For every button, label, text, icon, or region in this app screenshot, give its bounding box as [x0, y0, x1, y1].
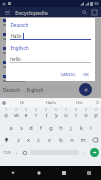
button[interactable]: Switch keyboard: [76, 166, 101, 180]
button[interactable]: s: [16, 120, 26, 133]
button[interactable]: Hei: [65, 98, 94, 107]
button[interactable]: Enter: [88, 146, 101, 159]
staticText: Deutsch: [3, 87, 20, 93]
staticText: Encyclopedia: [15, 9, 48, 16]
button[interactable]: 5: [41, 107, 51, 120]
button[interactable]: Keyboard settings: [94, 98, 101, 107]
button[interactable]: d: [26, 120, 36, 133]
staticText: j: [70, 124, 72, 132]
staticText: r: [35, 111, 38, 119]
staticText: m: [80, 136, 86, 144]
staticText: 9: [85, 108, 87, 112]
button[interactable]: c: [33, 133, 44, 146]
staticText: l: [90, 124, 92, 132]
button[interactable]: [0, 73, 101, 87]
staticText: ,: [16, 149, 18, 156]
staticText: w: [14, 111, 19, 119]
staticText: d: [29, 124, 33, 132]
button[interactable]: 4: [31, 107, 41, 120]
staticText: y: [55, 111, 58, 119]
staticText: x: [27, 136, 30, 144]
staticText: 5: [45, 108, 47, 112]
button[interactable]: m: [77, 133, 88, 146]
staticText: c: [37, 136, 40, 144]
button[interactable]: Recent apps: [51, 166, 76, 180]
staticText: Englisch: [10, 45, 29, 51]
staticText: 8: [75, 108, 77, 112]
button[interactable]: [0, 59, 101, 73]
staticText: s: [20, 124, 23, 132]
button[interactable]: 9: [81, 107, 91, 120]
staticText: Englisch: [26, 87, 44, 93]
button[interactable]: 6: [51, 107, 61, 120]
staticText: 0: [95, 108, 97, 112]
button[interactable]: 2: [11, 107, 21, 120]
button[interactable]: Voice input: [0, 98, 7, 107]
staticText: CANCEL: [60, 72, 76, 77]
button[interactable]: Hallo: [36, 98, 65, 107]
staticText: f: [40, 124, 42, 132]
staticText: 2: [15, 108, 17, 112]
staticText: o: [84, 111, 88, 119]
staticText: e: [24, 111, 28, 119]
button[interactable]: Emoji: [21, 146, 29, 159]
button[interactable]: More options: [90, 8, 98, 16]
button[interactable]: n: [66, 133, 77, 146]
button[interactable]: j: [66, 120, 76, 133]
staticText: OK: [83, 72, 89, 77]
button[interactable]: 0: [91, 107, 101, 120]
staticText: Hallo: [10, 33, 22, 39]
button[interactable]: 7: [61, 107, 71, 120]
button[interactable]: a: [5, 120, 16, 133]
button[interactable]: ,: [13, 146, 21, 159]
button[interactable]: Home: [26, 166, 51, 180]
button[interactable]: Hi: [7, 98, 36, 107]
staticText: 1: [5, 108, 7, 112]
button[interactable]: Add entry: [79, 83, 92, 96]
button[interactable]: ?123: [0, 146, 13, 159]
button[interactable]: [0, 45, 101, 59]
button[interactable]: .: [80, 146, 88, 159]
button[interactable]: OK: [81, 70, 91, 79]
button[interactable]: Deutsch: [0, 85, 23, 94]
staticText: ?123: [3, 150, 11, 155]
staticText: k: [80, 124, 83, 132]
button[interactable]: Search: [80, 8, 88, 16]
staticText: 4: [35, 108, 37, 112]
button[interactable]: Shift: [0, 133, 13, 146]
button[interactable]: z: [13, 133, 23, 146]
button[interactable]: 8: [71, 107, 81, 120]
staticText: b: [59, 136, 63, 144]
button[interactable]: Hallo: [10, 31, 91, 40]
staticText: Hi: [20, 100, 24, 105]
button[interactable]: Backspace: [88, 133, 101, 146]
button[interactable]: CANCEL: [58, 70, 78, 79]
staticText: g: [49, 124, 53, 132]
button[interactable]: v: [44, 133, 55, 146]
button[interactable]: Open navigation drawer: [3, 8, 11, 16]
button[interactable]: g: [46, 120, 56, 133]
staticText: t: [45, 111, 48, 119]
staticText: i: [75, 111, 77, 119]
button[interactable]: k: [76, 120, 86, 133]
staticText: v: [48, 136, 51, 144]
staticText: Deutsch: [10, 22, 29, 28]
button[interactable]: h: [56, 120, 66, 133]
button[interactable]: 1: [0, 107, 11, 120]
button[interactable]: f: [36, 120, 46, 133]
staticText: .: [83, 149, 85, 156]
button[interactable]: 3: [21, 107, 31, 120]
staticText: 7: [65, 108, 67, 112]
button[interactable]: b: [55, 133, 66, 146]
button[interactable]: l: [86, 120, 96, 133]
staticText: Hei: [76, 100, 83, 105]
button[interactable]: [0, 17, 101, 31]
button[interactable]: x: [23, 133, 33, 146]
button[interactable]: hello: [10, 54, 91, 63]
button[interactable]: [0, 31, 101, 45]
staticText: u: [64, 111, 68, 119]
button[interactable]: Englisch: [23, 85, 47, 94]
button[interactable]: Back: [0, 166, 26, 180]
staticText: z: [17, 136, 20, 144]
